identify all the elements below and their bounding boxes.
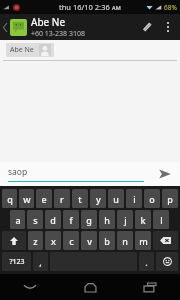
staticText: . xyxy=(145,256,148,268)
staticText: t xyxy=(78,193,82,205)
button[interactable]: More options xyxy=(159,18,177,36)
staticText: f xyxy=(69,214,73,226)
button[interactable]: t xyxy=(72,189,88,208)
staticText: 68% xyxy=(164,3,177,12)
staticText: r xyxy=(60,193,64,205)
staticText: b xyxy=(104,235,110,247)
button[interactable]: a xyxy=(10,210,25,229)
button[interactable]: q xyxy=(2,189,17,208)
staticText: i xyxy=(133,193,136,205)
button[interactable]: j xyxy=(117,210,133,229)
staticText: Abe Ne xyxy=(31,15,66,29)
button[interactable]: , xyxy=(33,252,48,271)
button[interactable]: x xyxy=(45,231,61,250)
button[interactable]: ?123 xyxy=(2,252,31,271)
button[interactable]: y xyxy=(90,189,106,208)
button[interactable]: Recent apps xyxy=(120,274,180,300)
staticText: s xyxy=(33,214,38,226)
staticText: z xyxy=(33,235,38,247)
staticText: y xyxy=(96,193,101,205)
button[interactable]: Emoji xyxy=(156,252,178,271)
staticText: p xyxy=(167,193,173,205)
staticText: j xyxy=(124,214,127,226)
button[interactable]: Hide keyboard xyxy=(0,274,60,300)
button[interactable]: w xyxy=(19,189,34,208)
button[interactable]: z xyxy=(28,231,43,250)
button[interactable]: u xyxy=(108,189,124,208)
staticText: o xyxy=(149,193,155,205)
button[interactable]: k xyxy=(135,210,151,229)
staticText: k xyxy=(140,214,146,226)
button[interactable]: v xyxy=(81,231,97,250)
staticText: d xyxy=(50,214,56,226)
staticText: Abe Ne xyxy=(10,45,34,55)
button[interactable]: o xyxy=(144,189,160,208)
button[interactable]: e xyxy=(36,189,52,208)
staticText: e xyxy=(41,193,47,205)
button[interactable]: f xyxy=(63,210,79,229)
staticText: w xyxy=(23,193,31,205)
button[interactable]: r xyxy=(54,189,70,208)
staticText: q xyxy=(7,193,13,205)
button[interactable]: p xyxy=(162,189,178,208)
staticText: n xyxy=(122,235,128,247)
button[interactable]: h xyxy=(99,210,115,229)
button[interactable]: Send xyxy=(150,162,180,186)
staticText: a xyxy=(15,214,21,226)
button[interactable]: Shift xyxy=(2,231,26,250)
staticText: v xyxy=(87,235,92,247)
staticText: c xyxy=(69,235,74,247)
staticText: m xyxy=(139,235,148,247)
staticText: ?123 xyxy=(9,257,25,267)
staticText: g xyxy=(86,214,92,226)
staticText: h xyxy=(104,214,110,226)
button[interactable]: m xyxy=(135,231,151,250)
button[interactable]: n xyxy=(117,231,133,250)
staticText: x xyxy=(51,235,56,247)
staticText: , xyxy=(39,256,42,268)
button[interactable]: . xyxy=(139,252,154,271)
staticText: l xyxy=(160,214,163,226)
other: Back xyxy=(3,23,8,32)
button[interactable]: Abe Ne xyxy=(6,43,54,57)
button[interactable]: g xyxy=(81,210,97,229)
button[interactable]: l xyxy=(153,210,169,229)
staticText: saop xyxy=(8,166,28,178)
button[interactable]: d xyxy=(45,210,61,229)
button[interactable]: Backspace xyxy=(153,231,178,250)
button[interactable]: c xyxy=(63,231,79,250)
staticText: u xyxy=(113,193,119,205)
button[interactable]: i xyxy=(126,189,142,208)
staticText: thu 16/10 2:36 ᴀᴍ xyxy=(59,2,122,12)
button[interactable]: s xyxy=(27,210,43,229)
button[interactable]: Home xyxy=(60,274,120,300)
button[interactable]: Attach xyxy=(135,15,159,39)
button[interactable]: b xyxy=(99,231,115,250)
staticText: +60 13-238 3108 xyxy=(31,29,85,39)
